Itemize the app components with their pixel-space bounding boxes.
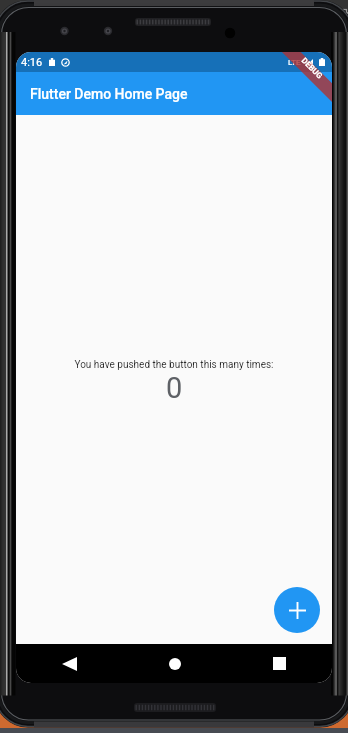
button[interactable]: Home (122, 644, 227, 683)
staticText: You have pushed the button this many tim… (74, 359, 274, 371)
button[interactable]: Back (16, 644, 122, 683)
staticText: 4:16 (21, 56, 43, 69)
staticText: DEBUG (300, 56, 324, 81)
button[interactable]: Recents (227, 644, 332, 683)
staticText: Flutter Demo Home Page (30, 86, 188, 102)
staticText: LTE (288, 58, 301, 67)
staticText: 0 (166, 371, 183, 405)
button[interactable]: Increment (274, 587, 320, 633)
